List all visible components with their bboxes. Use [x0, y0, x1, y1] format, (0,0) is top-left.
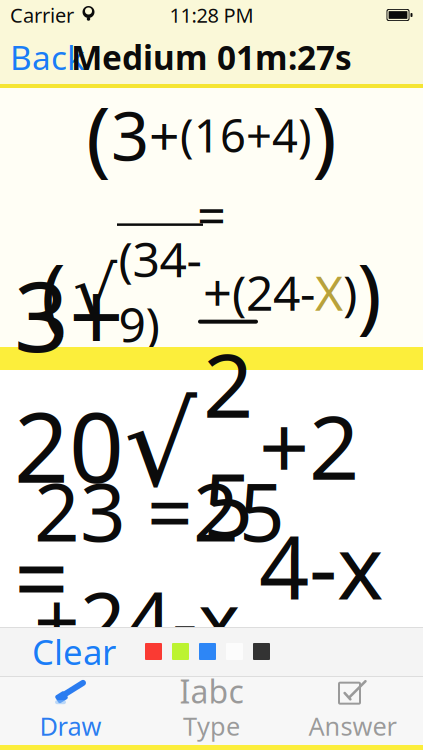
staticText: +24-x: [259, 266, 384, 625]
button[interactable]: Clear: [22, 622, 126, 680]
button[interactable]: Draw: [0, 670, 141, 750]
staticText: Answer: [308, 709, 396, 743]
staticText: Draw: [39, 709, 101, 743]
staticText: X: [315, 259, 343, 325]
staticText: 23 =25 +24-x: [34, 456, 285, 674]
staticText: ): [312, 79, 337, 191]
staticText: ): [343, 259, 357, 325]
staticText: (: [41, 236, 66, 348]
button[interactable]: Green: [167, 633, 194, 670]
staticText: 3: [111, 90, 149, 180]
staticText: Back: [10, 35, 85, 79]
staticText: (34-9): [118, 226, 201, 357]
button[interactable]: Black: [248, 633, 275, 670]
staticText: 11:28 PM: [169, 2, 253, 28]
staticText: +: [203, 257, 232, 326]
staticText: Carrier: [10, 2, 74, 28]
staticText: +: [149, 99, 180, 171]
staticText: (16+4): [180, 104, 312, 166]
staticText: ): [357, 236, 382, 348]
button[interactable]: White: [221, 633, 248, 670]
staticText: Type: [183, 709, 240, 743]
staticText: √: [124, 379, 197, 512]
staticText: =: [197, 180, 226, 249]
staticText: 25: [203, 324, 253, 563]
button[interactable]: Red: [140, 633, 167, 670]
button[interactable]: Answer: [282, 670, 423, 750]
staticText: 3+20=: [14, 249, 124, 642]
staticText: Iabc: [179, 669, 243, 713]
staticText: (24-: [232, 259, 315, 325]
button[interactable]: Back: [0, 27, 95, 87]
staticText: (: [86, 79, 111, 191]
button[interactable]: Blue: [194, 633, 221, 670]
staticText: Clear: [32, 628, 116, 674]
staticText: Medium 01m:27s: [71, 35, 352, 79]
staticText: √: [73, 252, 117, 332]
button[interactable]: Iabc: [141, 670, 282, 750]
